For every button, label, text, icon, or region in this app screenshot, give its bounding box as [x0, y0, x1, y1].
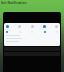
- staticText: Get Notification: [1, 1, 27, 5]
- button[interactable]: Quick setting toggle: [55, 25, 58, 28]
- button[interactable]: Quick setting toggle: [18, 25, 21, 28]
- button[interactable]: Quick setting toggle: [43, 25, 46, 28]
- button[interactable]: Quick setting toggle: [6, 25, 9, 28]
- button[interactable]: Quick setting toggle: [31, 25, 34, 28]
